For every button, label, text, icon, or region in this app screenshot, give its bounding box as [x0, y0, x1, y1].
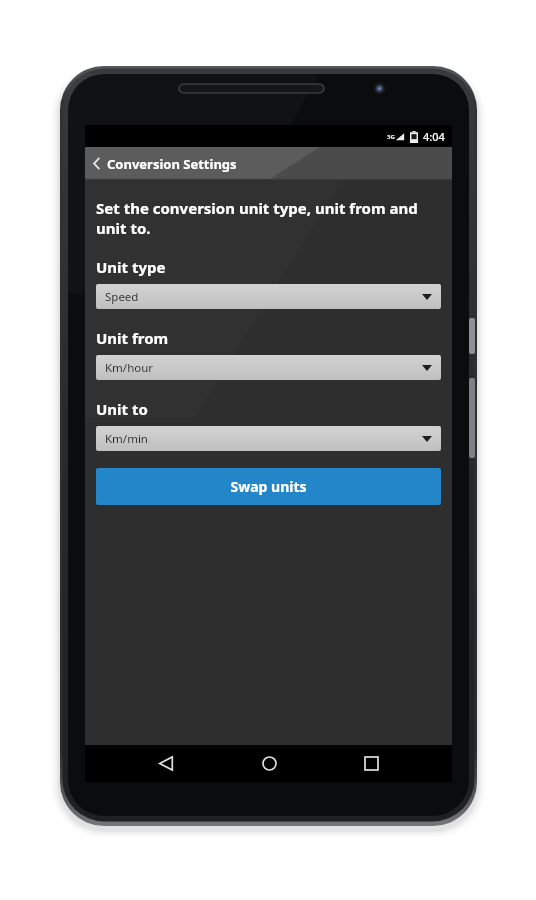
button[interactable]: Km/min [96, 426, 441, 451]
staticText: Km/hour [105, 360, 154, 376]
staticText: Unit to [96, 399, 148, 419]
button[interactable]: Km/hour [96, 355, 441, 380]
button[interactable]: Back [144, 745, 188, 782]
button[interactable]: Back [85, 147, 249, 180]
staticText: Set the conversion unit type, unit from … [96, 198, 441, 238]
button[interactable]: Home [247, 745, 291, 782]
staticText: Swap units [230, 477, 307, 496]
staticText: Speed [105, 289, 139, 305]
button[interactable]: Recent apps [349, 745, 393, 782]
button[interactable]: Swap units [96, 468, 441, 505]
staticText: Unit type [96, 257, 166, 277]
staticText: Unit from [96, 328, 169, 348]
button[interactable]: Speed [96, 284, 441, 309]
staticText: Km/min [105, 431, 148, 447]
staticText: Conversion Settings [107, 155, 237, 173]
staticText: 4:04 [423, 129, 445, 144]
staticText: 3G [387, 133, 395, 141]
